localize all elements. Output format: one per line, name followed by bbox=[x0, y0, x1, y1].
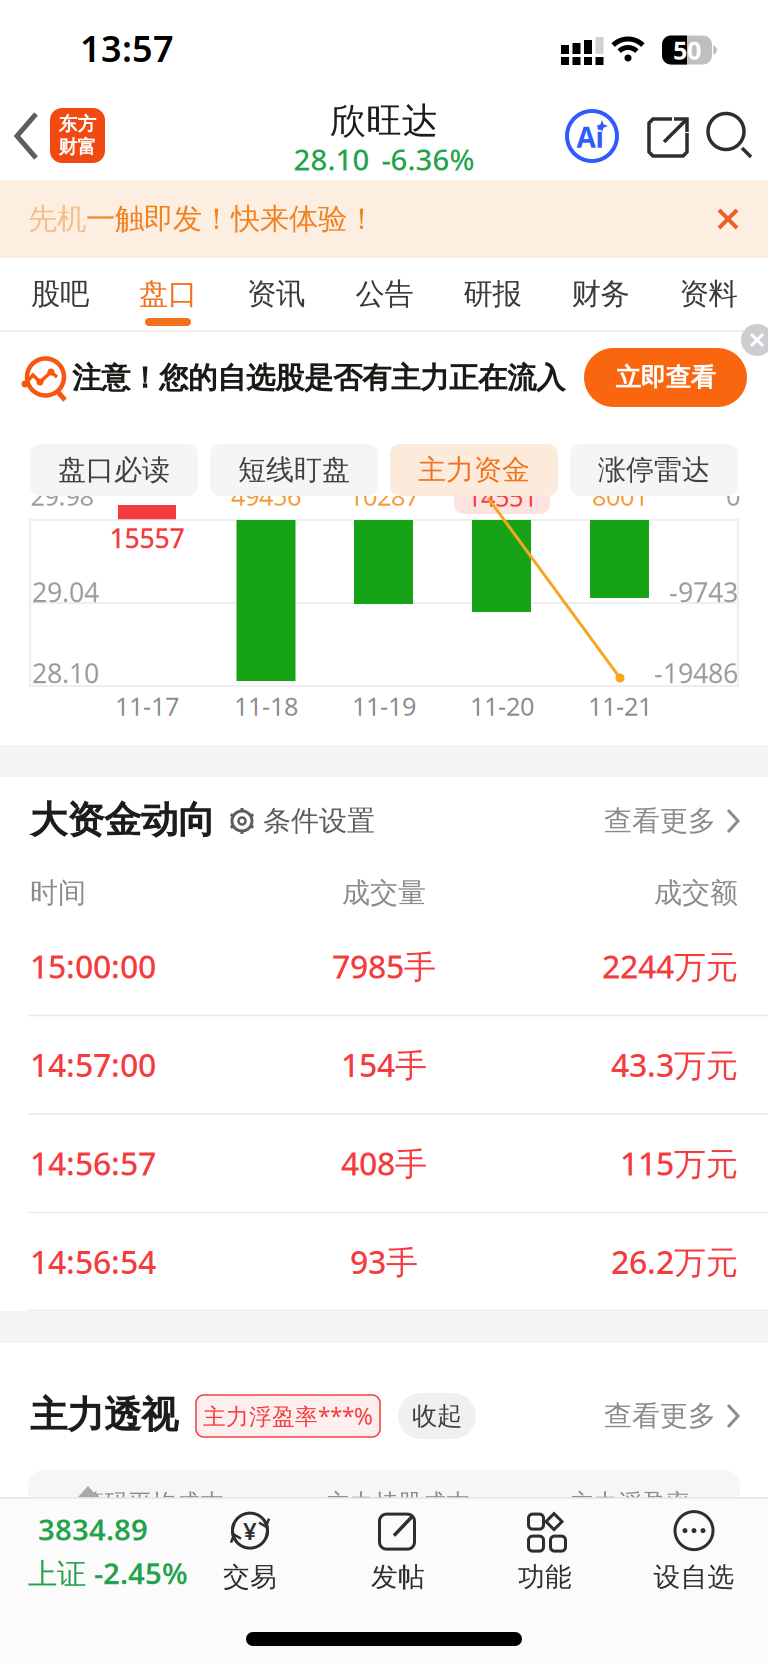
button[interactable]: 查看更多 bbox=[604, 804, 740, 838]
button[interactable]: Share bbox=[646, 115, 690, 160]
staticText: 东方 bbox=[58, 113, 96, 135]
staticText: 成交量 bbox=[342, 876, 426, 910]
staticText: 交易 bbox=[223, 1561, 277, 1593]
staticText: 29.98 bbox=[30, 479, 93, 513]
button[interactable]: Close banner bbox=[713, 204, 743, 234]
staticText: 50 bbox=[673, 33, 701, 67]
button[interactable]: 涨停雷达 bbox=[570, 444, 738, 496]
staticText: 15557 bbox=[109, 520, 184, 556]
staticText: 26.2万元 bbox=[611, 1240, 738, 1283]
staticText: 14:56:54 bbox=[30, 1240, 156, 1283]
staticText: 2244万元 bbox=[602, 945, 738, 987]
staticText: 功能 bbox=[518, 1561, 572, 1593]
staticText: 公告 bbox=[355, 276, 413, 312]
staticText: 主力透视 bbox=[30, 1392, 178, 1438]
staticText: 28.10 bbox=[32, 655, 99, 691]
staticText: 财务 bbox=[571, 276, 629, 312]
staticText: 14:57:00 bbox=[30, 1043, 156, 1086]
button[interactable]: Search bbox=[707, 112, 753, 159]
staticText: 49456 bbox=[231, 479, 301, 513]
button[interactable]: 资料 bbox=[660, 261, 756, 327]
button[interactable]: 功能 bbox=[518, 1509, 572, 1593]
staticText: 大资金动向 bbox=[30, 797, 215, 843]
button[interactable]: Close notice bbox=[741, 324, 768, 356]
staticText: 成交额 bbox=[654, 876, 738, 910]
button[interactable]: 设自选 bbox=[653, 1509, 734, 1593]
staticText: 115万元 bbox=[620, 1142, 738, 1184]
staticText: 主力浮盈率 bbox=[570, 1488, 690, 1518]
button[interactable]: Back bbox=[5, 106, 49, 166]
staticText: 11-17 bbox=[115, 689, 179, 723]
staticText: 涨停雷达 bbox=[598, 453, 710, 487]
staticText: 15:00:00 bbox=[30, 945, 156, 987]
staticText: 43.3万元 bbox=[611, 1043, 738, 1086]
staticText: 欣旺达 bbox=[330, 99, 438, 143]
staticText: 14:56:57 bbox=[30, 1142, 156, 1184]
staticText: 10287 bbox=[349, 479, 419, 513]
staticText: 主力持股成本 bbox=[326, 1488, 470, 1518]
staticText: 93手 bbox=[350, 1240, 418, 1283]
button[interactable]: 东方财富 bbox=[50, 108, 105, 163]
staticText: 154手 bbox=[341, 1043, 427, 1086]
staticText: 29.04 bbox=[32, 574, 99, 610]
staticText: 条件设置 bbox=[263, 804, 375, 838]
staticText: 资料 bbox=[679, 276, 737, 312]
button[interactable]: 发帖 bbox=[371, 1509, 425, 1593]
staticText: 主力资金 bbox=[418, 453, 530, 487]
staticText: -6.36% bbox=[381, 139, 474, 178]
button[interactable]: 财务 bbox=[552, 261, 648, 327]
staticText: 股吧 bbox=[31, 276, 89, 312]
staticText: 查看更多 bbox=[604, 1399, 716, 1433]
staticText: 28.10 bbox=[293, 139, 369, 178]
button[interactable]: 先机 bbox=[28, 201, 708, 237]
staticText: 11-19 bbox=[352, 689, 416, 723]
button[interactable]: 主力资金 bbox=[390, 444, 558, 496]
staticText: 上证 -2.45% bbox=[28, 1553, 188, 1592]
staticText: 11-21 bbox=[588, 689, 652, 723]
staticText: 资讯 bbox=[247, 276, 305, 312]
staticText: 11-18 bbox=[234, 689, 298, 723]
staticText: 3834.89 bbox=[38, 1509, 148, 1548]
staticText: 408手 bbox=[341, 1142, 427, 1184]
button[interactable]: 短线盯盘 bbox=[210, 444, 378, 496]
button[interactable]: 3834.89 bbox=[28, 1509, 224, 1592]
staticText: 8001 bbox=[592, 479, 648, 513]
button[interactable]: 盘口 bbox=[120, 261, 216, 327]
staticText: Ai bbox=[576, 118, 603, 156]
staticText: 7985手 bbox=[332, 945, 436, 987]
staticText: 短线盯盘 bbox=[238, 453, 350, 487]
button[interactable]: 公告 bbox=[336, 261, 432, 327]
staticText: 发帖 bbox=[371, 1561, 425, 1593]
staticText: 研报 bbox=[463, 276, 521, 312]
staticText: 筹码平均成本 bbox=[80, 1488, 224, 1518]
button[interactable]: ¥ bbox=[223, 1509, 277, 1593]
staticText: 11-20 bbox=[470, 689, 534, 723]
staticText: 设自选 bbox=[653, 1561, 734, 1593]
staticText: -19486 bbox=[654, 655, 738, 691]
button[interactable]: Ai bbox=[565, 109, 619, 163]
button[interactable]: 研报 bbox=[444, 261, 540, 327]
staticText: 财富 bbox=[58, 135, 96, 158]
staticText: 时间 bbox=[30, 876, 86, 910]
button[interactable]: 条件设置 bbox=[229, 804, 375, 838]
button[interactable]: 股吧 bbox=[12, 261, 108, 327]
staticText: 先机 bbox=[28, 201, 86, 237]
staticText: -9743 bbox=[669, 574, 738, 610]
staticText: 查看更多 bbox=[604, 804, 716, 838]
button[interactable]: 立即查看 bbox=[584, 348, 747, 407]
staticText: 注意！您的自选股是否有主力正在流入 bbox=[72, 360, 565, 396]
button[interactable]: 查看更多 bbox=[604, 1399, 740, 1433]
button[interactable]: 盘口必读 bbox=[30, 444, 198, 496]
staticText: 盘口 bbox=[139, 276, 197, 312]
staticText: 收起 bbox=[412, 1400, 462, 1431]
staticText: 一触即发！快来体验！ bbox=[86, 201, 376, 237]
staticText: 13:57 bbox=[80, 24, 174, 72]
staticText: 立即查看 bbox=[615, 362, 715, 393]
staticText: 盘口必读 bbox=[58, 453, 170, 487]
button[interactable]: 资讯 bbox=[228, 261, 324, 327]
staticText: 14551 bbox=[467, 480, 537, 514]
button[interactable]: 收起 bbox=[398, 1393, 476, 1439]
staticText: 主力浮盈率***% bbox=[203, 1401, 373, 1431]
staticText: ¥ bbox=[243, 1515, 257, 1547]
staticText: 0 bbox=[726, 479, 740, 513]
